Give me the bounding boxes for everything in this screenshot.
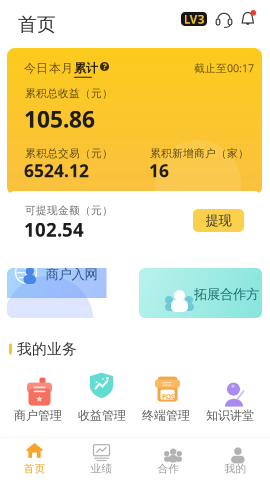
- button[interactable]: LV3: [181, 12, 207, 26]
- staticText: 累计: [74, 61, 98, 76]
- button[interactable]: 拓展合作方: [139, 268, 262, 318]
- staticText: 累积总收益（元）: [25, 87, 113, 100]
- staticText: 累积总交易（元）: [25, 147, 113, 160]
- button[interactable]: 累计: [74, 61, 98, 78]
- staticText: 6524.12: [24, 159, 89, 182]
- staticText: 终端管理: [142, 408, 190, 423]
- staticText: 本月: [49, 61, 73, 76]
- staticText: ?: [102, 60, 106, 72]
- button[interactable]: Help: [100, 62, 109, 71]
- staticText: 首页: [23, 462, 45, 475]
- staticText: 拓展合作方: [194, 286, 259, 302]
- button[interactable]: 首页: [1, 438, 68, 480]
- staticText: 我的业务: [17, 340, 77, 358]
- button[interactable]: Notifications: [240, 10, 257, 27]
- staticText: 累积新增商户（家）: [150, 147, 249, 160]
- staticText: 我的: [224, 462, 246, 475]
- button[interactable]: 提现: [193, 209, 244, 232]
- staticText: 截止至00:17: [194, 61, 254, 75]
- button[interactable]: POS: [134, 372, 198, 422]
- staticText: 今日: [24, 61, 48, 76]
- button[interactable]: 今日: [24, 61, 48, 76]
- staticText: 105.86: [24, 104, 95, 134]
- staticText: 提现: [205, 212, 231, 229]
- button[interactable]: 合作: [135, 438, 202, 480]
- staticText: 16: [149, 159, 169, 182]
- staticText: 知识讲堂: [206, 408, 254, 423]
- button[interactable]: 知识讲堂: [198, 372, 262, 422]
- button[interactable]: 我的: [202, 438, 269, 480]
- staticText: 商户入网: [45, 266, 97, 282]
- staticText: 收益管理: [78, 408, 126, 423]
- button[interactable]: 本月: [49, 61, 73, 76]
- staticText: LV3: [183, 11, 204, 27]
- staticText: 可提现金额（元）: [25, 204, 113, 217]
- staticText: 业绩: [90, 462, 112, 475]
- staticText: 商户管理: [14, 408, 62, 423]
- button[interactable]: 商户入网: [7, 268, 130, 318]
- button[interactable]: 商户管理: [6, 372, 70, 422]
- staticText: POS: [162, 392, 175, 401]
- button[interactable]: Customer support: [216, 11, 232, 29]
- button[interactable]: 业绩: [68, 438, 135, 480]
- staticText: 合作: [157, 462, 179, 475]
- staticText: 102.54: [24, 217, 84, 242]
- button[interactable]: 收益管理: [70, 372, 134, 422]
- staticText: 首页: [18, 13, 56, 36]
